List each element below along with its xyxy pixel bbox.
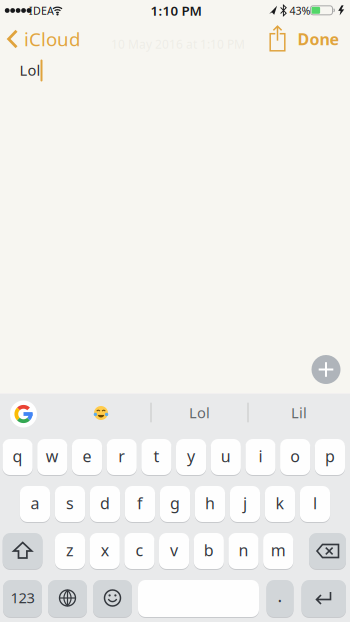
staticText: s [66,492,74,514]
button[interactable]: Laughing emoji suggestion [93,405,108,420]
staticText: x [101,539,109,561]
staticText: b [204,539,214,561]
staticText: Lol [19,60,40,80]
staticText: l [313,492,317,514]
button[interactable]: s [55,485,85,522]
button[interactable]: i [245,438,276,475]
button[interactable]: c [124,532,154,569]
button[interactable]: Period [266,579,293,617]
button[interactable]: Return [301,579,346,617]
staticText: w [46,445,59,467]
staticText: Lil [291,403,307,422]
staticText: Lol [189,403,210,422]
button[interactable]: Switch keyboard [48,579,87,617]
button[interactable]: Google search [10,400,37,427]
button[interactable]: z [55,532,85,569]
button[interactable]: Delete [309,532,346,569]
button[interactable]: p [315,438,345,475]
button[interactable]: o [280,438,310,475]
button[interactable]: m [263,532,293,569]
staticText: u [221,445,231,467]
staticText: r [118,445,125,467]
staticText: e [82,445,91,467]
button[interactable]: v [159,532,189,569]
button[interactable]: y [176,438,206,475]
staticText: v [170,539,178,561]
button[interactable]: n [228,532,259,569]
staticText: m [271,539,286,561]
staticText: c [135,539,143,561]
staticText: d [100,492,110,514]
staticText: y [187,445,195,467]
staticText: iCloud [24,27,80,51]
staticText: 43% [289,3,310,18]
button[interactable]: u [211,438,241,475]
button[interactable]: Add [311,355,340,384]
button[interactable]: Share [269,25,285,51]
button[interactable]: Back to iCloud [0,24,86,54]
button[interactable]: x [90,532,120,569]
button[interactable]: Lol [154,396,244,428]
staticText: h [205,492,215,514]
staticText: k [275,492,284,514]
staticText: IDEA [29,3,54,18]
staticText: t [153,445,159,467]
staticText: p [325,445,335,467]
staticText: j [243,492,247,514]
button[interactable]: Space [138,579,259,617]
button[interactable]: q [2,438,33,475]
staticText: a [30,492,39,514]
staticText: q [13,445,23,467]
button[interactable]: Shift [3,532,42,569]
button[interactable]: Emoji [93,579,132,617]
staticText: Done [297,28,339,50]
button[interactable]: e [72,438,102,475]
button[interactable]: Numbers [3,579,42,617]
staticText: f [137,492,143,514]
staticText: 1:10 PM [150,2,201,19]
staticText: . [277,584,282,607]
staticText: i [258,445,262,467]
button[interactable]: t [141,438,171,475]
button[interactable]: j [230,485,260,522]
button[interactable]: g [160,485,190,522]
staticText: g [170,492,180,514]
button[interactable]: b [194,532,224,569]
button[interactable]: w [37,438,67,475]
button[interactable]: r [107,438,137,475]
staticText: n [238,539,248,561]
button[interactable]: d [90,485,120,522]
button[interactable]: Done [290,24,346,54]
button[interactable]: k [265,485,295,522]
staticText: 123 [10,588,34,607]
button[interactable]: Lil [254,396,344,428]
staticText: z [66,539,74,561]
button[interactable]: l [300,485,330,522]
button[interactable]: h [195,485,225,522]
button[interactable]: f [125,485,155,522]
staticText: o [290,445,300,467]
button[interactable]: a [20,485,50,522]
